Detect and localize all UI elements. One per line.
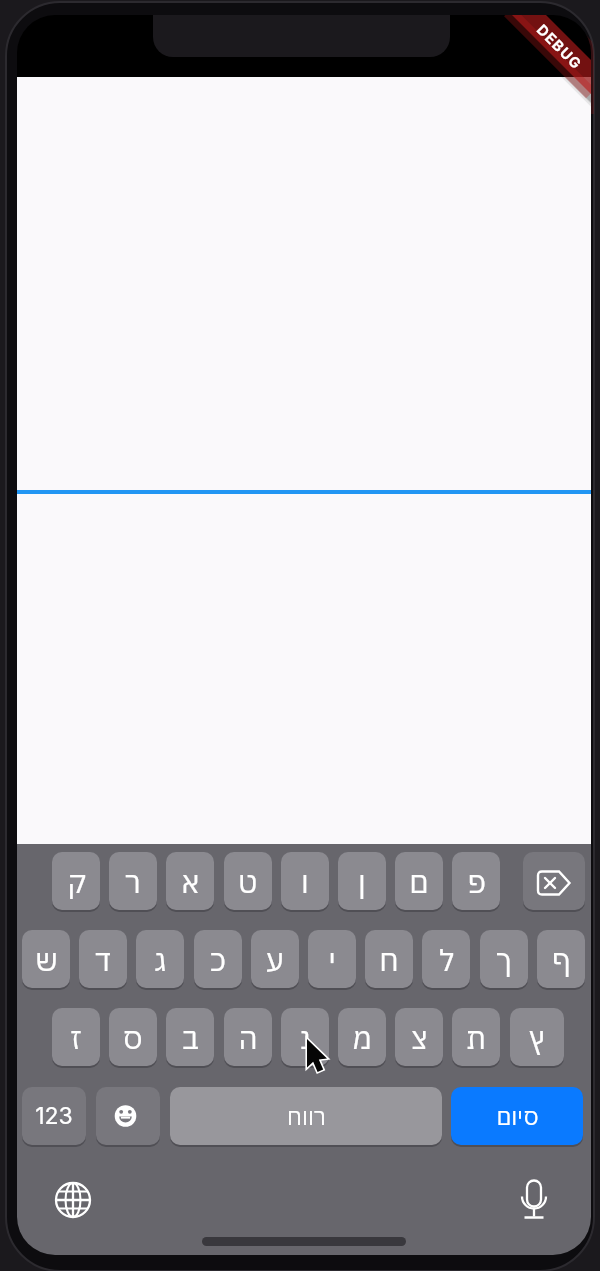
button[interactable]: ק	[52, 852, 100, 910]
button[interactable]: סיום	[451, 1087, 583, 1145]
button[interactable]: ל	[422, 930, 470, 988]
button[interactable]: ש	[22, 930, 70, 988]
button[interactable]	[53, 1180, 93, 1220]
staticText: ח	[379, 940, 399, 979]
staticText: פ	[467, 862, 486, 901]
button[interactable]: ג	[136, 930, 184, 988]
staticText: ו	[301, 862, 309, 901]
button[interactable]: ד	[79, 930, 127, 988]
button[interactable]: פ	[452, 852, 500, 910]
button[interactable]: ם	[395, 852, 443, 910]
button[interactable]: ס	[109, 1008, 157, 1066]
button[interactable]	[523, 852, 585, 910]
button[interactable]: כ	[194, 930, 242, 988]
button[interactable]: ז	[52, 1008, 100, 1066]
staticText: רווח	[287, 1101, 326, 1131]
staticText: א	[181, 862, 200, 901]
button[interactable]: ר	[109, 852, 157, 910]
staticText: ש	[35, 940, 58, 979]
staticText: ך	[496, 940, 512, 979]
button[interactable]	[514, 1179, 554, 1219]
staticText: ר	[125, 862, 141, 901]
staticText: ץ	[529, 1018, 545, 1057]
staticText: ה	[238, 1018, 258, 1057]
staticText: 123	[35, 1102, 73, 1130]
staticText: י	[328, 940, 336, 979]
button[interactable]: ך	[480, 930, 528, 988]
staticText: ט	[238, 862, 258, 901]
button[interactable]: צ	[395, 1008, 443, 1066]
button[interactable]	[96, 1087, 160, 1145]
button[interactable]: ו	[281, 852, 329, 910]
staticText: ז	[70, 1018, 82, 1057]
button[interactable]: ע	[251, 930, 299, 988]
staticText: ס	[123, 1018, 143, 1057]
staticText: ל	[439, 940, 454, 979]
button[interactable]: רווח	[170, 1087, 442, 1145]
staticText: ע	[266, 940, 284, 979]
button[interactable]: ט	[224, 852, 272, 910]
button[interactable]: מ	[338, 1008, 386, 1066]
button[interactable]: ח	[365, 930, 413, 988]
staticText: ן	[358, 862, 366, 901]
staticText: ת	[466, 1018, 486, 1057]
button[interactable]: ה	[224, 1008, 272, 1066]
button[interactable]: 123	[22, 1087, 86, 1145]
button[interactable]: נ	[281, 1008, 329, 1066]
button[interactable]: ב	[166, 1008, 214, 1066]
button[interactable]: ת	[452, 1008, 500, 1066]
button[interactable]: DEBUG	[519, 15, 591, 87]
staticText: ק	[67, 862, 86, 901]
staticText: DEBUG	[533, 21, 586, 74]
staticText: ד	[95, 940, 111, 979]
staticText: ב	[182, 1018, 199, 1057]
staticText: מ	[352, 1018, 372, 1057]
button[interactable]: י	[308, 930, 356, 988]
staticText: כ	[210, 940, 226, 979]
staticText: ם	[409, 862, 429, 901]
staticText: צ	[411, 1018, 428, 1057]
staticText: ג	[154, 940, 167, 979]
button[interactable]: ץ	[510, 1008, 564, 1066]
staticText: סיום	[496, 1101, 539, 1131]
button[interactable]: א	[166, 852, 214, 910]
button[interactable]: ן	[338, 852, 386, 910]
staticText: נ	[300, 1018, 311, 1057]
staticText: ף	[552, 940, 571, 979]
button[interactable]: ף	[537, 930, 585, 988]
button[interactable]	[17, 77, 591, 844]
